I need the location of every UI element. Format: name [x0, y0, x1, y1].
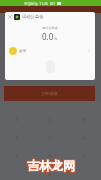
staticText: 累计公益金 — [42, 26, 58, 30]
staticText: 2 — [48, 116, 52, 124]
staticText: 0.0 — [42, 31, 54, 42]
button[interactable]: Close — [6, 13, 13, 20]
button[interactable]: 0 — [33, 165, 67, 180]
button[interactable]: 立即领取 — [4, 86, 95, 101]
staticText: 吉林龙网 — [28, 158, 76, 173]
staticText: 吉林龙网 — [28, 159, 76, 174]
staticText: 中国移动 11:25 HD — [24, 1, 57, 6]
staticText: 吉林龙网 — [27, 158, 75, 173]
staticText: 8 — [48, 152, 52, 160]
button[interactable]: 7 — [0, 147, 33, 165]
staticText: 金币 — [19, 49, 27, 54]
button[interactable]: 9 — [67, 147, 101, 165]
staticText: 运动公益金 — [22, 14, 44, 19]
staticText: 吉林龙网 — [27, 159, 75, 174]
staticText: 元 — [54, 37, 58, 41]
staticText: 9 — [82, 152, 86, 160]
button[interactable] — [67, 165, 101, 180]
button[interactable] — [0, 165, 33, 180]
button[interactable]: 金币 — [5, 45, 95, 57]
staticText: 4 — [15, 134, 19, 142]
staticText: 吉林龙网 — [28, 157, 76, 172]
staticText: 吉林龙网 — [26, 157, 74, 172]
staticText: 吉林龙网 — [26, 159, 74, 174]
staticText: 吉林龙网 — [26, 158, 74, 173]
staticText: 0 — [48, 170, 52, 178]
staticText: 立即领取 — [41, 91, 58, 96]
button[interactable]: 8 — [33, 147, 67, 165]
staticText: 吉林龙网 — [27, 157, 75, 172]
